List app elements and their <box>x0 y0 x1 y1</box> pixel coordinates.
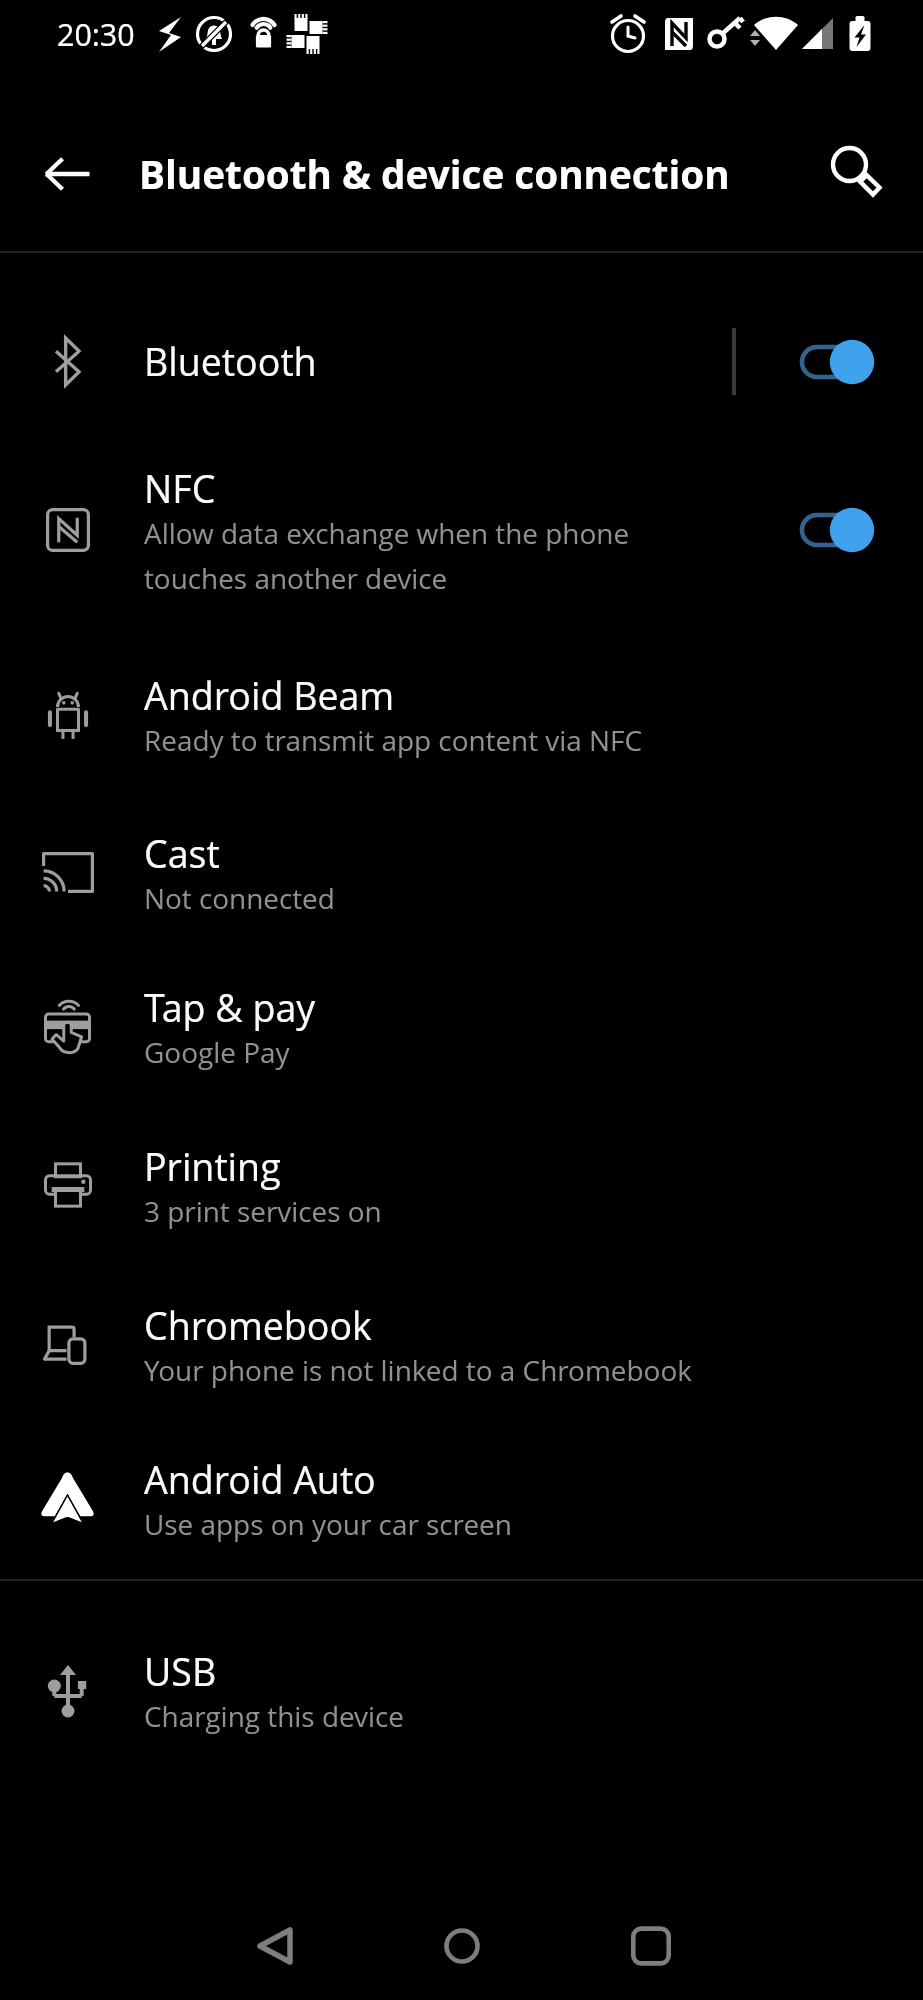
button[interactable]: NFC <box>0 426 923 633</box>
staticText: Chromebook <box>144 1300 372 1351</box>
staticText: Android Auto <box>144 1454 376 1505</box>
staticText: Tap & pay <box>144 982 316 1033</box>
staticText: Bluetooth & device connection <box>139 148 730 201</box>
button[interactable]: Cast <box>0 793 923 951</box>
button[interactable]: NFC switch <box>780 426 900 633</box>
button[interactable]: USB <box>0 1611 923 1769</box>
button[interactable]: Bluetooth switch <box>780 297 900 426</box>
button[interactable]: Back <box>21 128 113 220</box>
button[interactable]: Back <box>215 1884 335 2000</box>
button[interactable]: Bluetooth <box>0 297 923 426</box>
button[interactable]: Android Auto <box>0 1422 923 1574</box>
button[interactable]: Printing <box>0 1106 923 1264</box>
button[interactable]: Tap & pay <box>0 950 923 1102</box>
staticText: Use apps on your car screen <box>144 1505 512 1543</box>
staticText: NFC <box>144 463 216 514</box>
staticText: USB <box>144 1646 217 1697</box>
staticText: Android Beam <box>144 670 395 721</box>
staticText: Bluetooth <box>144 336 317 387</box>
button[interactable]: Recents <box>591 1884 711 2000</box>
staticText: Cast <box>144 828 220 879</box>
staticText: Not connected <box>144 879 335 917</box>
button[interactable]: Search <box>813 128 905 220</box>
staticText: Google Pay <box>144 1033 290 1071</box>
button[interactable]: Home <box>402 1884 522 2000</box>
staticText: 20:30 <box>57 14 135 55</box>
staticText: Your phone is not linked to a Chromebook <box>144 1351 692 1389</box>
staticText: Printing <box>144 1141 281 1192</box>
button[interactable]: Chromebook <box>0 1265 923 1423</box>
staticText: Ready to transmit app content via NFC <box>144 721 643 759</box>
button[interactable]: Android Beam <box>0 635 923 793</box>
staticText: 3 print services on <box>144 1192 382 1230</box>
staticText: Allow data exchange when the phone touch… <box>144 514 630 597</box>
staticText: Charging this device <box>144 1697 405 1735</box>
